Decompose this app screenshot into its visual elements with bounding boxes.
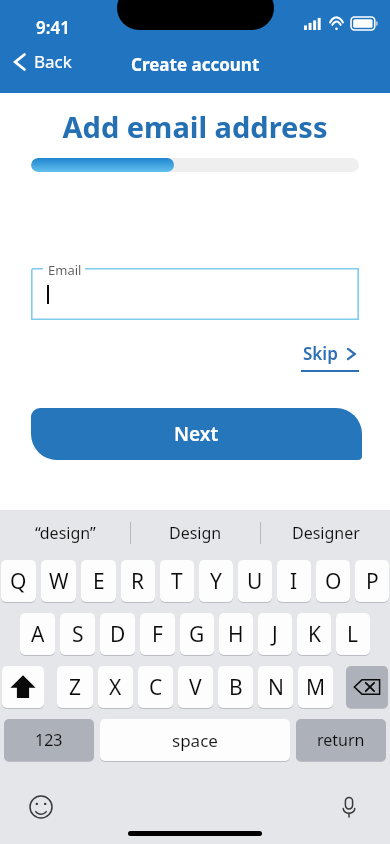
button[interactable]: A: [20, 613, 55, 655]
button[interactable]: T: [160, 560, 194, 602]
staticText: F: [152, 620, 163, 649]
button[interactable]: Email: [31, 268, 359, 320]
staticText: return: [317, 729, 365, 751]
button[interactable]: Back: [8, 46, 76, 77]
button[interactable]: Y: [199, 560, 233, 602]
button[interactable]: Skip: [301, 342, 359, 372]
button[interactable]: S: [60, 613, 95, 655]
staticText: U: [247, 567, 263, 596]
button[interactable]: U: [238, 560, 272, 602]
staticText: A: [31, 620, 45, 649]
button[interactable]: G: [180, 613, 214, 655]
staticText: space: [172, 729, 218, 752]
staticText: Email: [48, 261, 82, 279]
staticText: G: [189, 620, 205, 649]
staticText: X: [109, 673, 122, 702]
button[interactable]: H: [219, 613, 253, 655]
button[interactable]: “design”: [0, 522, 130, 544]
button[interactable]: Dictation: [332, 790, 366, 824]
button[interactable]: N: [258, 666, 293, 708]
button[interactable]: Q: [1, 560, 36, 602]
button[interactable]: E: [81, 560, 116, 602]
staticText: Y: [210, 567, 222, 596]
button[interactable]: J: [258, 613, 292, 655]
button[interactable]: 123: [4, 719, 94, 761]
staticText: O: [325, 567, 342, 596]
staticText: Q: [10, 567, 27, 596]
button[interactable]: Next: [31, 408, 362, 460]
button[interactable]: Designer: [261, 522, 390, 544]
button[interactable]: Emoji keyboard: [24, 790, 58, 824]
button[interactable]: F: [140, 613, 175, 655]
staticText: L: [347, 620, 359, 649]
button[interactable]: X: [98, 666, 133, 708]
staticText: Design: [169, 522, 222, 544]
staticText: P: [366, 567, 379, 596]
button[interactable]: B: [218, 666, 253, 708]
staticText: J: [272, 620, 278, 649]
staticText: C: [149, 673, 163, 702]
staticText: Designer: [292, 522, 360, 544]
staticText: R: [131, 567, 145, 596]
button[interactable]: W: [41, 560, 76, 602]
button[interactable]: D: [100, 613, 135, 655]
staticText: 9:41: [36, 16, 70, 39]
staticText: W: [49, 567, 69, 596]
staticText: K: [308, 620, 321, 649]
staticText: T: [171, 567, 183, 596]
staticText: Skip: [303, 342, 338, 365]
button[interactable]: space: [100, 719, 290, 761]
button[interactable]: P: [355, 560, 389, 602]
button[interactable]: K: [297, 613, 331, 655]
button[interactable]: L: [336, 613, 370, 655]
staticText: H: [228, 620, 244, 649]
button[interactable]: O: [316, 560, 350, 602]
button[interactable]: Z: [57, 666, 93, 708]
button[interactable]: Shift: [2, 666, 44, 708]
staticText: Create account: [131, 53, 260, 76]
staticText: Z: [69, 673, 82, 702]
button[interactable]: C: [138, 666, 173, 708]
button[interactable]: M: [298, 666, 333, 708]
staticText: Next: [174, 421, 219, 447]
staticText: E: [93, 567, 105, 596]
button[interactable]: R: [121, 560, 155, 602]
staticText: N: [268, 673, 284, 702]
staticText: B: [229, 673, 243, 702]
staticText: D: [110, 620, 126, 649]
staticText: “design”: [35, 522, 96, 544]
button[interactable]: Design: [131, 522, 260, 544]
staticText: M: [306, 673, 326, 702]
button[interactable]: V: [178, 666, 213, 708]
button[interactable]: Backspace: [346, 666, 388, 708]
staticText: S: [72, 620, 84, 649]
staticText: V: [189, 673, 202, 702]
button[interactable]: I: [277, 560, 311, 602]
staticText: I: [290, 567, 298, 596]
staticText: Add email address: [0, 107, 390, 146]
staticText: Back: [34, 50, 72, 73]
staticText: 123: [35, 729, 63, 751]
button[interactable]: return: [296, 719, 386, 761]
